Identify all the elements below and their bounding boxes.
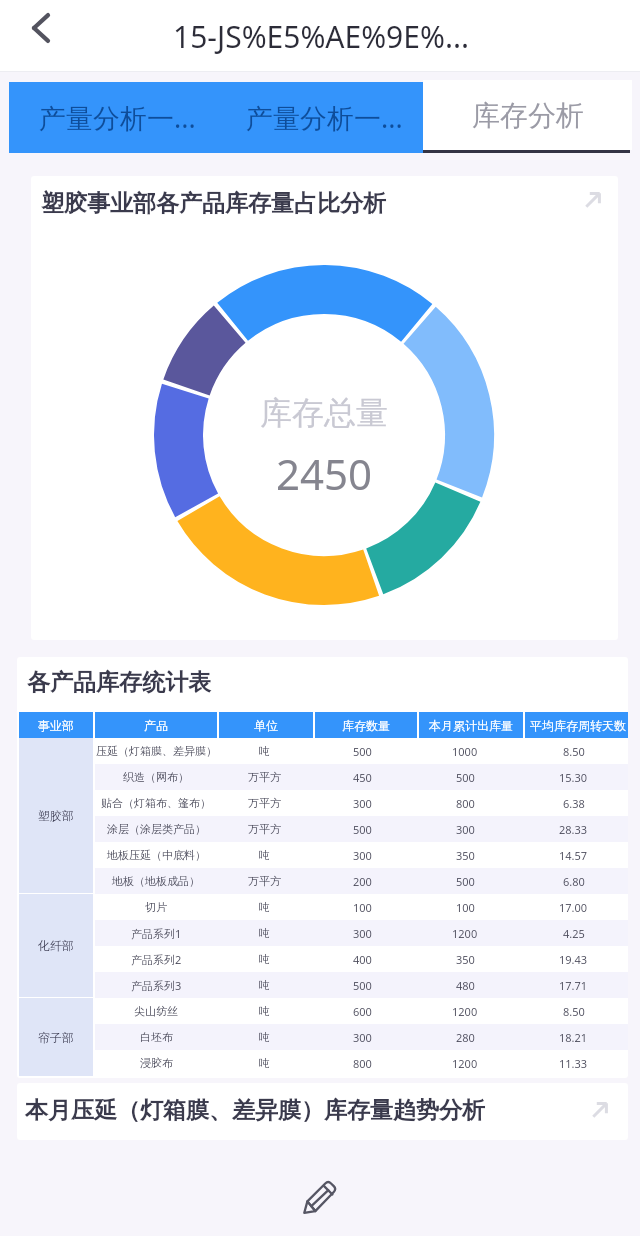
staticText: 化纤部	[38, 938, 74, 953]
staticText: 塑胶事业部各产品库存量占比分析	[41, 189, 386, 218]
staticText: 吨	[259, 952, 270, 966]
staticText: 产品系列2	[131, 952, 182, 967]
staticText: 100	[353, 900, 372, 915]
staticText: 200	[353, 874, 372, 889]
staticText: 各产品库存统计表	[27, 668, 211, 697]
staticText: 1000	[452, 744, 478, 759]
staticText: 万平方	[248, 822, 281, 836]
staticText: 450	[353, 770, 372, 785]
staticText: 产品	[144, 718, 168, 733]
staticText: 吨	[259, 1056, 270, 1070]
staticText: 吨	[259, 978, 270, 992]
staticText: 产量分析一...	[246, 99, 403, 136]
staticText: 300	[353, 1030, 372, 1045]
staticText: 平均库存周转天数	[530, 718, 626, 733]
staticText: 6.38	[563, 796, 585, 811]
staticText: 地板压延（中底料）	[107, 848, 206, 862]
staticText: 350	[456, 848, 475, 863]
staticText: 300	[353, 848, 372, 863]
staticText: 600	[353, 1004, 372, 1019]
staticText: 产品系列3	[131, 978, 182, 993]
staticText: 17.00	[559, 900, 588, 915]
button[interactable]: Back	[0, 0, 72, 72]
staticText: 800	[353, 1056, 372, 1071]
staticText: 17.71	[559, 978, 588, 993]
staticText: 白坯布	[140, 1030, 173, 1044]
staticText: 15-JS%E5%AE%9E%...	[173, 16, 470, 57]
staticText: 500	[456, 874, 475, 889]
staticText: 1200	[452, 1004, 478, 1019]
staticText: 11.33	[559, 1056, 588, 1071]
staticText: 库存总量	[260, 393, 388, 433]
staticText: 1200	[452, 1056, 478, 1071]
staticText: 织造（网布）	[123, 770, 189, 784]
staticText: 800	[456, 796, 475, 811]
staticText: 500	[456, 770, 475, 785]
staticText: 500	[353, 744, 372, 759]
button[interactable]: Expand	[579, 1089, 621, 1131]
staticText: 吨	[259, 848, 270, 862]
staticText: 吨	[259, 1030, 270, 1044]
staticText: 本月压延（灯箱膜、差异膜）库存量趋势分析	[25, 1096, 485, 1125]
staticText: 库存数量	[342, 718, 390, 733]
staticText: 480	[456, 978, 475, 993]
staticText: 28.33	[559, 822, 588, 837]
staticText: 帘子部	[38, 1030, 74, 1045]
staticText: 吨	[259, 1004, 270, 1018]
button[interactable]: 库存分析	[423, 80, 632, 150]
staticText: 万平方	[248, 874, 281, 888]
staticText: 本月累计出库量	[429, 718, 513, 733]
staticText: 1200	[452, 926, 478, 941]
button[interactable]: 产量分析一...	[9, 82, 216, 153]
staticText: 500	[353, 822, 372, 837]
staticText: 切片	[145, 900, 167, 914]
staticText: 库存分析	[472, 98, 584, 133]
staticText: 尖山纺丝	[134, 1004, 178, 1018]
staticText: 单位	[254, 718, 278, 733]
staticText: 300	[353, 796, 372, 811]
staticText: 18.21	[559, 1030, 588, 1045]
staticText: 8.50	[563, 1004, 585, 1019]
staticText: 吨	[259, 926, 270, 940]
staticText: 280	[456, 1030, 475, 1045]
staticText: 压延（灯箱膜、差异膜）	[96, 744, 217, 758]
staticText: 19.43	[559, 952, 588, 967]
staticText: 400	[353, 952, 372, 967]
staticText: 500	[353, 978, 372, 993]
staticText: 产品系列1	[131, 926, 182, 941]
staticText: 产量分析一...	[39, 99, 196, 136]
staticText: 吨	[259, 744, 270, 758]
staticText: 100	[456, 900, 475, 915]
staticText: 万平方	[248, 770, 281, 784]
button[interactable]: Edit	[288, 1165, 352, 1229]
staticText: 300	[353, 926, 372, 941]
staticText: 万平方	[248, 796, 281, 810]
staticText: 塑胶部	[38, 808, 74, 823]
staticText: 300	[456, 822, 475, 837]
staticText: 8.50	[563, 744, 585, 759]
staticText: 涂层（涂层类产品）	[107, 822, 206, 836]
staticText: 地板（地板成品）	[112, 874, 200, 888]
staticText: 浸胶布	[140, 1056, 173, 1070]
staticText: 贴合（灯箱布、篷布）	[101, 796, 211, 810]
button[interactable]: 产量分析一...	[216, 82, 423, 153]
staticText: 6.80	[563, 874, 585, 889]
staticText: 14.57	[559, 848, 588, 863]
staticText: 4.25	[563, 926, 585, 941]
staticText: 350	[456, 952, 475, 967]
button[interactable]: Expand	[572, 179, 614, 221]
staticText: 事业部	[38, 718, 74, 733]
staticText: 吨	[259, 900, 270, 914]
staticText: 2450	[276, 445, 373, 502]
staticText: 15.30	[559, 770, 588, 785]
